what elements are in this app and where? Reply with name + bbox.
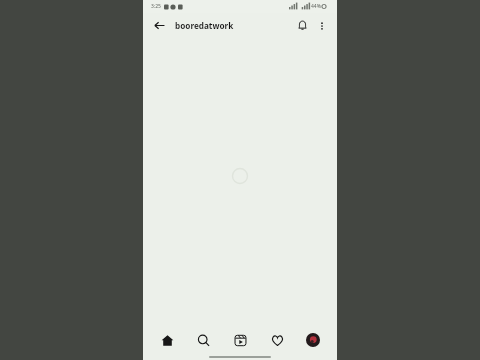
button[interactable]: More options [313,17,330,34]
button[interactable]: Reels [227,327,253,353]
staticText: 3:25 [151,3,161,10]
button[interactable]: Search [190,327,216,353]
button[interactable]: Activity [264,327,290,353]
button[interactable]: Back [149,15,169,35]
button[interactable]: Profile [300,327,326,353]
staticText: booredatwork [175,20,234,31]
staticText: 44% [311,3,321,10]
button[interactable]: Home [154,327,180,353]
button[interactable]: Notifications [293,16,312,35]
